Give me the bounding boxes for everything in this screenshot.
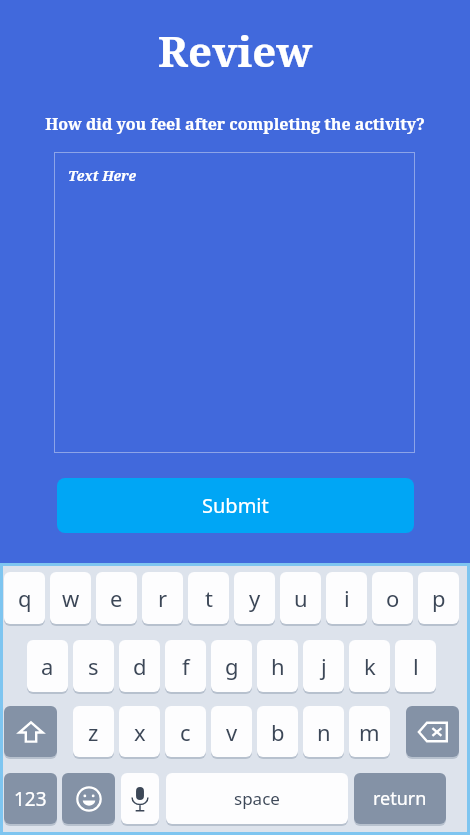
button[interactable]: t: [188, 572, 229, 624]
button[interactable]: u: [280, 572, 321, 624]
button[interactable]: space: [166, 773, 348, 824]
button[interactable]: Voice input: [121, 773, 159, 824]
button[interactable]: Shift: [4, 706, 57, 757]
staticText: z: [88, 717, 99, 747]
staticText: d: [133, 651, 147, 681]
staticText: b: [271, 717, 285, 747]
staticText: v: [226, 717, 238, 747]
staticText: Review: [158, 22, 313, 79]
staticText: x: [134, 717, 146, 747]
button[interactable]: Text Here: [54, 152, 415, 453]
button[interactable]: return: [354, 773, 446, 824]
button[interactable]: b: [257, 706, 298, 757]
button[interactable]: Emoji: [62, 773, 115, 824]
staticText: m: [359, 717, 380, 747]
staticText: s: [88, 651, 99, 681]
staticText: g: [225, 651, 239, 681]
staticText: k: [364, 651, 376, 681]
staticText: space: [234, 787, 280, 810]
button[interactable]: x: [119, 706, 160, 757]
button[interactable]: y: [234, 572, 275, 624]
staticText: w: [62, 583, 80, 613]
button[interactable]: a: [27, 640, 68, 692]
button[interactable]: p: [418, 572, 459, 624]
button[interactable]: r: [142, 572, 183, 624]
button[interactable]: c: [165, 706, 206, 757]
staticText: i: [344, 583, 350, 613]
button[interactable]: s: [73, 640, 114, 692]
staticText: y: [249, 583, 261, 613]
staticText: r: [158, 583, 168, 613]
button[interactable]: v: [211, 706, 252, 757]
button[interactable]: n: [303, 706, 344, 757]
button[interactable]: i: [326, 572, 367, 624]
staticText: return: [373, 786, 427, 811]
button[interactable]: w: [50, 572, 91, 624]
staticText: Text Here: [68, 166, 137, 185]
staticText: c: [180, 717, 191, 747]
button[interactable]: Backspace: [406, 706, 459, 757]
staticText: f: [182, 651, 190, 681]
button[interactable]: m: [349, 706, 390, 757]
button[interactable]: f: [165, 640, 206, 692]
button[interactable]: z: [73, 706, 114, 757]
staticText: t: [205, 583, 213, 613]
button[interactable]: j: [303, 640, 344, 692]
button[interactable]: k: [349, 640, 390, 692]
button[interactable]: o: [372, 572, 413, 624]
staticText: q: [18, 583, 32, 613]
staticText: o: [386, 583, 400, 613]
staticText: p: [432, 583, 446, 613]
button[interactable]: g: [211, 640, 252, 692]
staticText: j: [321, 651, 327, 681]
staticText: Submit: [202, 492, 269, 519]
staticText: e: [110, 583, 123, 613]
button[interactable]: q: [4, 572, 45, 624]
staticText: How did you feel after completing the ac…: [45, 113, 425, 135]
button[interactable]: l: [395, 640, 436, 692]
staticText: u: [294, 583, 308, 613]
button[interactable]: h: [257, 640, 298, 692]
button[interactable]: d: [119, 640, 160, 692]
button[interactable]: e: [96, 572, 137, 624]
button[interactable]: Submit: [57, 478, 414, 533]
staticText: a: [41, 651, 54, 681]
button[interactable]: 123: [4, 773, 57, 824]
staticText: 123: [14, 786, 47, 812]
staticText: l: [413, 651, 419, 681]
staticText: n: [317, 717, 331, 747]
staticText: h: [271, 651, 285, 681]
